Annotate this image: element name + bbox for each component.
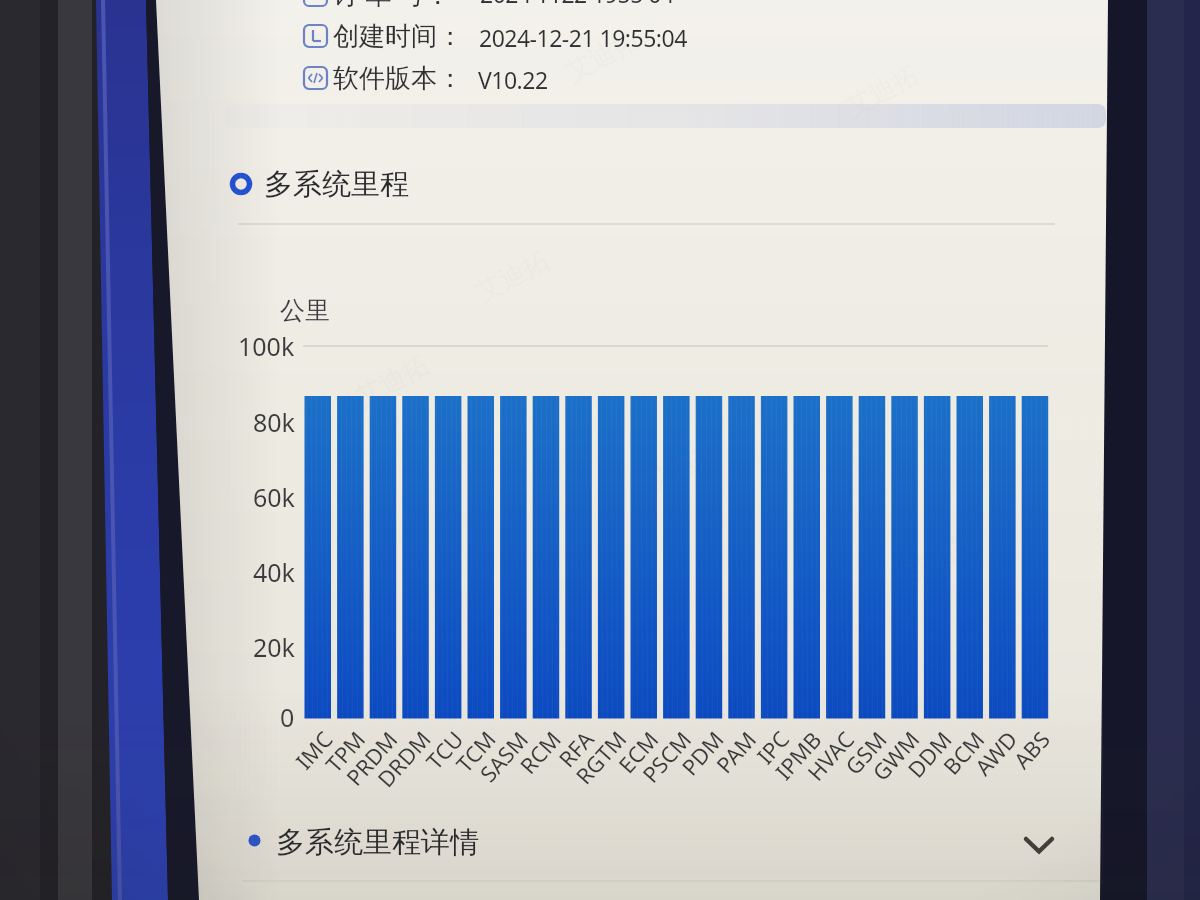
button[interactable] xyxy=(200,810,1100,880)
